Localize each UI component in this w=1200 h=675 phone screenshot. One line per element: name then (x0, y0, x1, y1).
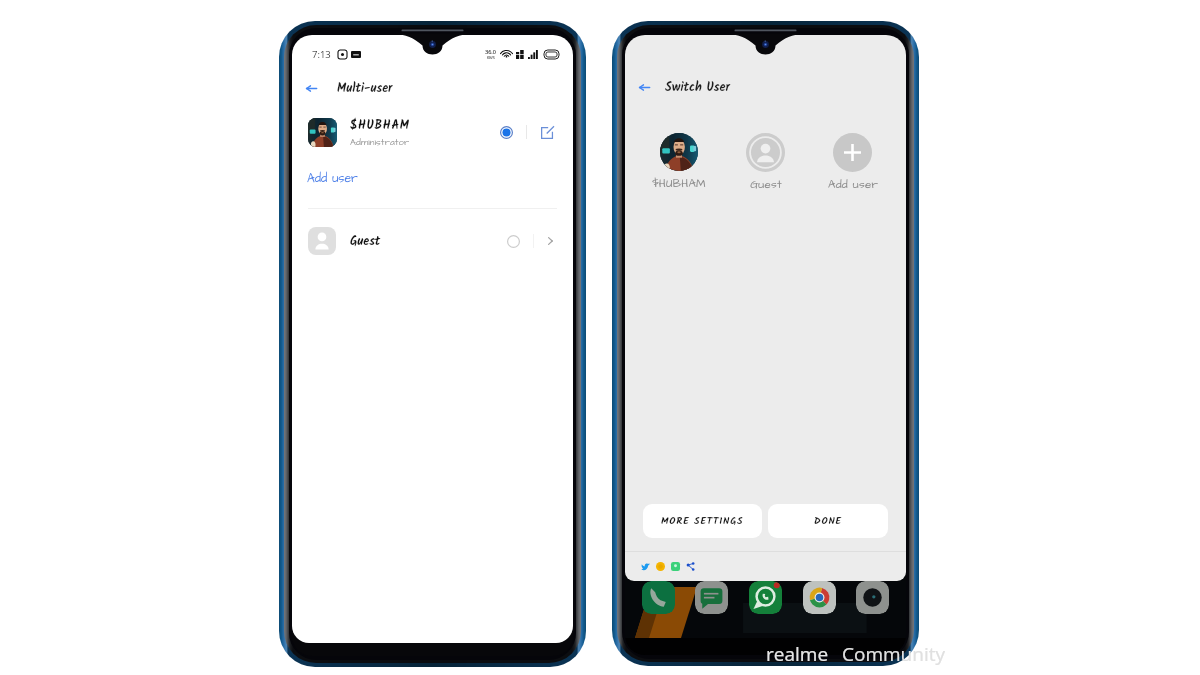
button[interactable]: Add user (809, 133, 896, 193)
button[interactable]: Back (625, 74, 906, 100)
staticText: KB/S (487, 55, 495, 60)
staticText: Guest (350, 232, 381, 251)
staticText: Community (842, 641, 945, 667)
button[interactable]: Add user (292, 167, 573, 189)
button[interactable]: Select Shubham (494, 120, 518, 144)
button[interactable]: DONE (768, 504, 888, 538)
button[interactable]: Phone (642, 581, 675, 614)
button[interactable]: Back (292, 75, 573, 101)
button[interactable]: Guest settings (538, 229, 562, 253)
staticText: 36.0 (485, 48, 496, 55)
staticText: MORE SETTINGS (661, 513, 744, 529)
button[interactable]: Chrome (803, 581, 836, 614)
button[interactable]: Edit user (535, 120, 559, 144)
button[interactable]: Camera (856, 581, 889, 614)
staticText: $HUBHAM (350, 116, 410, 135)
staticText: Add user (307, 170, 358, 187)
staticText: Switch User (665, 78, 730, 97)
button[interactable]: MORE SETTINGS (643, 504, 762, 538)
staticText: Add user (828, 177, 878, 193)
staticText: $HUBHAM (652, 176, 706, 192)
staticText: realme (766, 641, 829, 667)
button[interactable]: Select guest (501, 229, 525, 253)
button[interactable]: Messages (695, 581, 728, 614)
button[interactable]: Guest (722, 133, 809, 193)
button[interactable]: $HUBHAM (292, 113, 573, 151)
staticText: 7:13 (312, 48, 331, 61)
staticText: Administrator (350, 136, 410, 149)
button[interactable]: Guest (292, 226, 573, 256)
staticText: Guest (750, 177, 782, 193)
staticText: DONE (814, 513, 842, 529)
button[interactable]: Back (638, 82, 651, 93)
button[interactable]: $HUBHAM (636, 133, 722, 192)
staticText: Multi-user (337, 79, 393, 98)
button[interactable]: WhatsApp (749, 581, 782, 614)
button[interactable]: Back (305, 83, 318, 94)
